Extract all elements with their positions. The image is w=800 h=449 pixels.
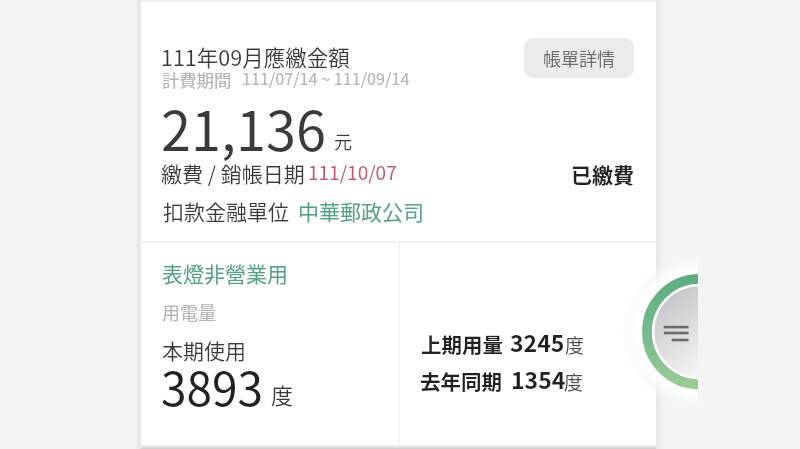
staticText: 已繳費 — [571, 159, 634, 189]
staticText: 繳費 / 銷帳日期 — [161, 158, 305, 188]
staticText: 中華郵政公司 — [298, 196, 424, 226]
staticText: 用電量 — [162, 299, 216, 325]
staticText: 度 — [271, 378, 294, 410]
button[interactable] — [141, 0, 656, 241]
staticText: 1354 — [511, 362, 566, 395]
staticText: 度 — [565, 331, 585, 359]
staticText: 帳單詳情 — [543, 45, 615, 71]
staticText: 上期用量 — [421, 329, 503, 359]
staticText: 111/07/14 ~ 111/09/14 — [242, 66, 410, 89]
staticText: 表燈非營業用 — [162, 258, 288, 288]
staticText: 3893 — [161, 353, 264, 420]
button[interactable] — [141, 243, 656, 447]
staticText: 扣款金融單位 — [163, 196, 289, 226]
staticText: 3245 — [510, 325, 565, 358]
staticText: 21,136 — [161, 88, 326, 166]
staticText: 度 — [564, 368, 584, 396]
staticText: 111年09月應繳金額 — [161, 41, 350, 72]
button[interactable]: 帳單詳情 — [524, 38, 634, 78]
staticText: 去年同期 — [420, 366, 502, 396]
staticText: 計費期間 — [162, 67, 232, 92]
staticText: 111/10/07 — [308, 158, 397, 186]
staticText: 本期使用 — [162, 335, 246, 365]
button[interactable]: Menu — [620, 252, 698, 412]
staticText: 元 — [334, 128, 352, 154]
